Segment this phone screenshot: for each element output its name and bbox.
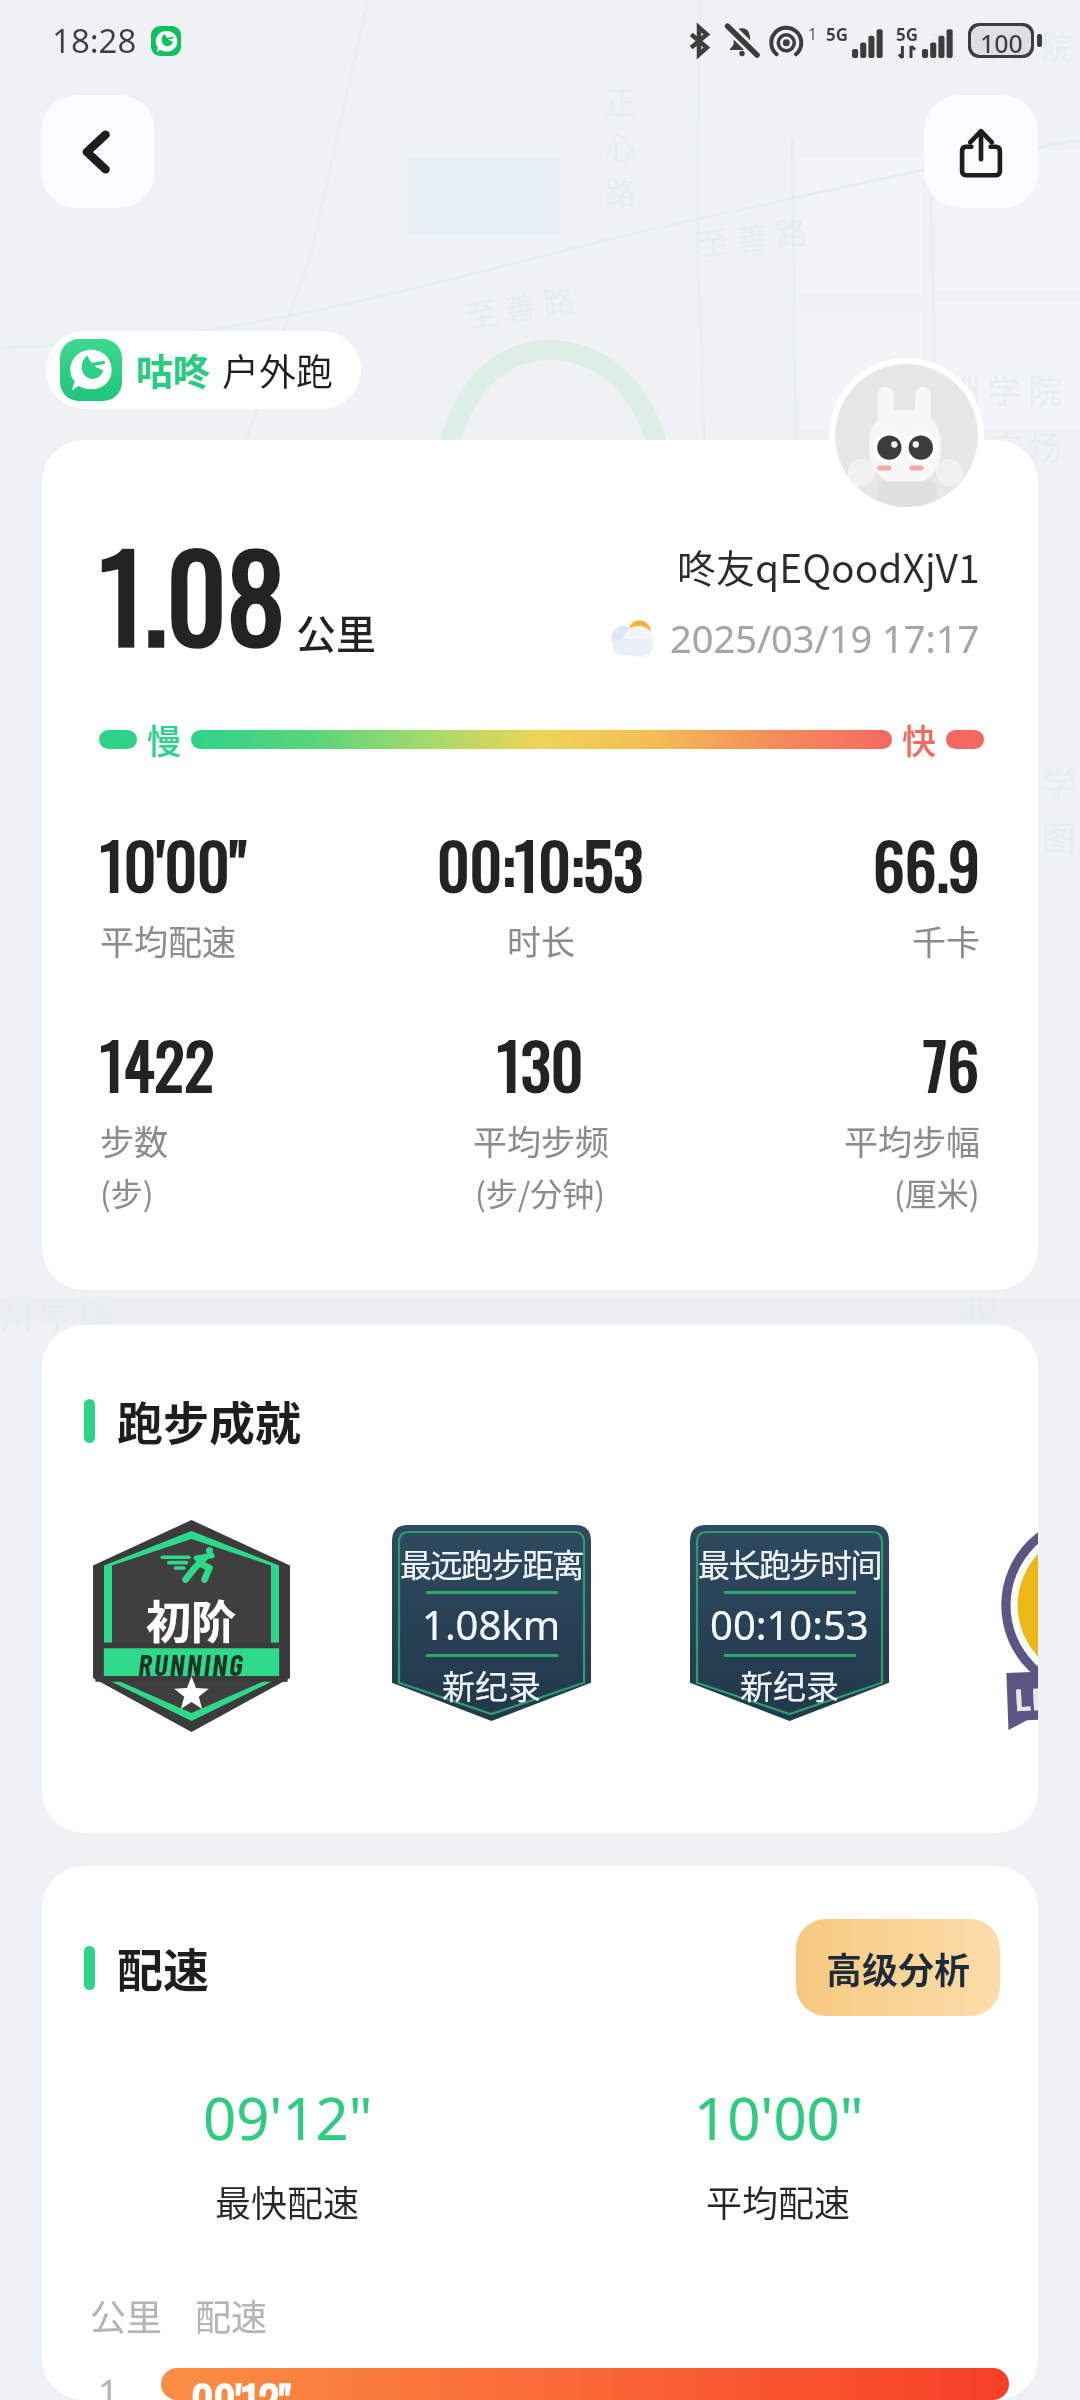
staticText: 00:10:53 bbox=[437, 817, 644, 910]
staticText: 最远跑步距离 bbox=[400, 1540, 584, 1586]
staticText: (步/分钟) bbox=[475, 1169, 606, 1215]
staticText: 初阶 bbox=[146, 1587, 237, 1652]
staticText: 平均配速 bbox=[706, 2175, 851, 2227]
staticText: 咕咚 bbox=[136, 343, 210, 397]
staticText: 18:28 bbox=[52, 18, 137, 63]
staticText: JU bbox=[960, 1285, 998, 1328]
staticText: 时长 bbox=[507, 916, 575, 965]
staticText: 5G bbox=[826, 23, 849, 46]
staticText: 1422 bbox=[100, 1017, 215, 1110]
staticText: 00:10:53 bbox=[710, 1597, 869, 1651]
staticText: 1 bbox=[98, 2368, 119, 2400]
staticText: 1 bbox=[808, 23, 818, 45]
staticText: 1.08 bbox=[100, 506, 286, 679]
staticText: 平均配速 bbox=[100, 916, 236, 965]
staticText: 配速 bbox=[117, 1934, 209, 2001]
staticText: 高级分析 bbox=[826, 1942, 971, 1994]
button[interactable]: Share bbox=[924, 95, 1038, 208]
staticText: (厘米) bbox=[894, 1169, 980, 1215]
staticText: 咚友qEQoodXjV1 bbox=[677, 538, 980, 594]
staticText: RUNNING bbox=[138, 1646, 245, 1682]
staticText: 76 bbox=[923, 1017, 980, 1110]
staticText: 最长跑步时间 bbox=[698, 1540, 882, 1586]
staticText: 门 广 场 bbox=[948, 422, 1062, 470]
staticText: 州 学 院 bbox=[0, 1290, 114, 1338]
staticText: 5G bbox=[896, 23, 919, 46]
staticText: (步) bbox=[100, 1169, 154, 1215]
button[interactable]: Back bbox=[41, 95, 155, 208]
staticText: 跑步成就 bbox=[117, 1387, 301, 1454]
staticText: 洲 学 院 bbox=[948, 365, 1062, 413]
staticText: 配速 bbox=[195, 2289, 268, 2341]
staticText: 1.08km bbox=[422, 1597, 561, 1651]
staticText: LEVEL bbox=[1013, 1675, 1038, 1720]
staticText: 平均步幅 bbox=[844, 1116, 980, 1165]
staticText: 新纪录 bbox=[442, 1661, 541, 1709]
staticText: 新纪录 bbox=[740, 1661, 839, 1709]
staticText: 100 bbox=[980, 26, 1023, 55]
staticText: 惠 州 学 院 bbox=[928, 22, 1073, 67]
staticText: 平均步频 bbox=[473, 1116, 609, 1165]
staticText: 户外跑 bbox=[222, 343, 333, 397]
staticText: 步数 bbox=[100, 1116, 168, 1165]
staticText: 千卡 bbox=[912, 916, 980, 965]
staticText: 09'12" bbox=[203, 2078, 373, 2157]
staticText: 最快配速 bbox=[215, 2175, 360, 2227]
staticText: 2025/03/19 17:17 bbox=[670, 612, 980, 664]
staticText: 慢 bbox=[147, 715, 181, 764]
staticText: 130 bbox=[497, 1017, 584, 1110]
button[interactable]: 咕咚 bbox=[60, 331, 333, 409]
staticText: 快 bbox=[902, 715, 936, 764]
staticText: 公里 bbox=[296, 603, 376, 661]
button[interactable]: 高级分析 bbox=[796, 1919, 1000, 2016]
staticText: 10'00" bbox=[694, 2078, 864, 2157]
staticText: 10'00" bbox=[100, 817, 247, 910]
staticText: 公里 bbox=[90, 2289, 163, 2341]
staticText: 66.9 bbox=[873, 817, 980, 910]
staticText: 09'12" bbox=[191, 2368, 291, 2400]
